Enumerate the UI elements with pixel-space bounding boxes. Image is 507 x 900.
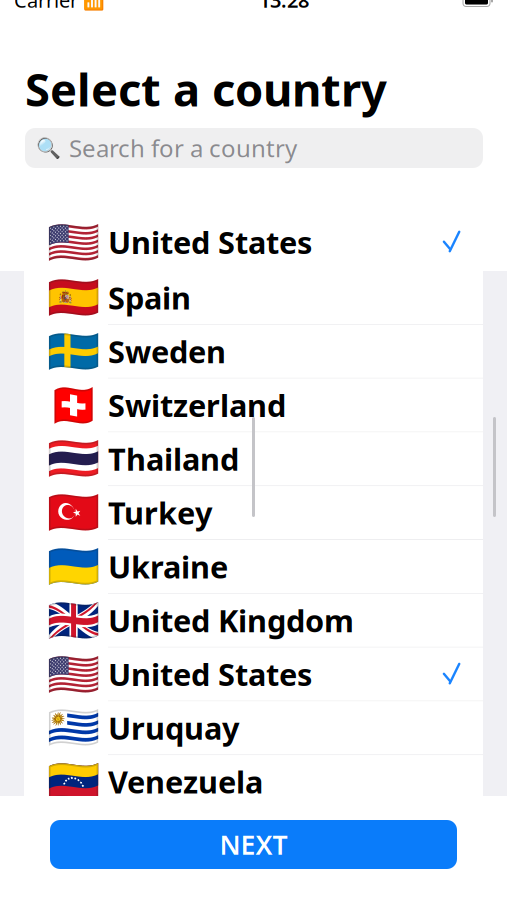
- button[interactable]: NEXT: [50, 820, 457, 869]
- staticText: 🇸🇪: [47, 327, 100, 376]
- staticText: 🇺🇦: [47, 542, 100, 591]
- button[interactable]: 🇹🇭: [24, 432, 483, 486]
- staticText: 🇨🇭: [47, 381, 100, 429]
- button[interactable]: 🇺🇾: [24, 701, 483, 755]
- staticText: Sweden: [108, 331, 226, 372]
- button[interactable]: 🇺🇸: [0, 213, 507, 271]
- staticText: NEXT: [219, 827, 287, 862]
- staticText: 13:28: [259, 0, 309, 13]
- button[interactable]: 🇹🇷: [24, 486, 483, 540]
- staticText: 🇺🇾: [47, 703, 100, 752]
- staticText: Turkey: [108, 492, 213, 533]
- staticText: 🇺🇸: [47, 218, 100, 266]
- button[interactable]: 🇬🇧: [24, 594, 483, 648]
- button[interactable]: 🔍: [25, 128, 483, 168]
- button[interactable]: 🇪🇸: [24, 271, 483, 325]
- staticText: Carrier: [14, 0, 78, 13]
- staticText: Uruquay: [108, 707, 240, 748]
- staticText: Spain: [108, 277, 191, 318]
- staticText: Select a country: [25, 59, 387, 119]
- staticText: United States: [108, 222, 312, 262]
- button[interactable]: 🇻🇪: [24, 755, 483, 809]
- staticText: Search for a country: [69, 132, 297, 164]
- staticText: Thailand: [108, 438, 239, 479]
- staticText: 📶: [78, 0, 105, 11]
- staticText: United States: [108, 654, 312, 694]
- staticText: 🇹🇷: [47, 488, 100, 537]
- staticText: 🇪🇸: [47, 273, 100, 322]
- staticText: 🔍: [36, 137, 61, 159]
- staticText: 🇹🇭: [47, 434, 100, 483]
- staticText: 🇺🇸: [47, 650, 100, 698]
- button[interactable]: 🇺🇸: [24, 648, 483, 701]
- staticText: Venezuela: [108, 761, 263, 802]
- button[interactable]: 🇸🇪: [24, 325, 483, 379]
- staticText: 🇬🇧: [47, 596, 100, 645]
- staticText: Switzerland: [108, 385, 286, 425]
- button[interactable]: 🇨🇭: [24, 379, 483, 432]
- staticText: Ukraine: [108, 546, 228, 587]
- staticText: 🇻🇪: [47, 757, 100, 806]
- staticText: United Kingdom: [108, 600, 354, 641]
- button[interactable]: 🇺🇦: [24, 540, 483, 594]
